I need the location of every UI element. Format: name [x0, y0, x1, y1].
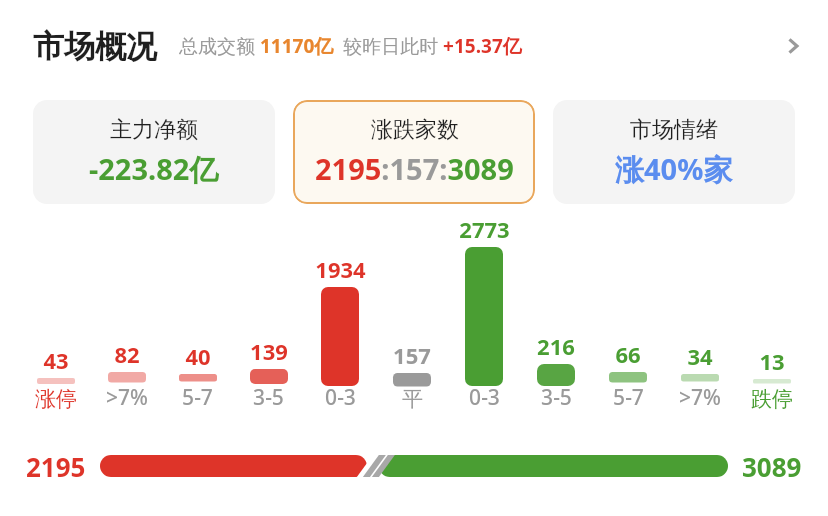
other: More market overview [776, 29, 810, 63]
staticText: 66 [615, 339, 641, 369]
staticText: 139 [250, 336, 288, 366]
button[interactable]: 主力净额 [33, 100, 275, 204]
staticText: 43 [43, 345, 69, 375]
staticText: 82 [114, 339, 140, 369]
staticText: 3089 [742, 449, 802, 484]
staticText: 5-7 [613, 383, 644, 412]
staticText: 34 [687, 341, 713, 371]
staticText: 跌停 [751, 386, 793, 412]
staticText: -223.82亿 [89, 149, 219, 189]
staticText: 0-3 [469, 383, 500, 412]
staticText: 2195 [26, 449, 86, 484]
staticText: 主力净额 [110, 116, 198, 144]
staticText: 1934 [315, 254, 366, 284]
staticText: 0-3 [325, 383, 356, 412]
staticText: 市场概况 [33, 27, 157, 66]
staticText: 3-5 [541, 383, 572, 412]
staticText: 市场情绪 [630, 116, 718, 144]
staticText: 157 [393, 340, 431, 370]
button[interactable]: 市场概况 [0, 0, 828, 92]
button[interactable]: 市场情绪 [553, 100, 795, 204]
staticText: 3-5 [253, 383, 284, 412]
staticText: 13 [759, 346, 785, 376]
staticText: 涨停 [35, 386, 77, 412]
staticText: 平 [402, 386, 423, 412]
staticText: >7% [679, 383, 721, 412]
staticText: 涨40%家 [615, 149, 733, 189]
staticText: 2195:157:3089 [315, 149, 514, 188]
staticText: 5-7 [182, 383, 213, 412]
staticText: 216 [537, 331, 575, 361]
staticText: 2773 [459, 214, 510, 244]
button[interactable]: 涨跌家数 [293, 100, 535, 204]
staticText: 40 [185, 341, 211, 371]
staticText: 涨跌家数 [371, 116, 459, 144]
staticText: >7% [106, 383, 148, 412]
staticText: 总成交额 11170亿 较昨日此时 +15.37亿 [179, 33, 522, 59]
